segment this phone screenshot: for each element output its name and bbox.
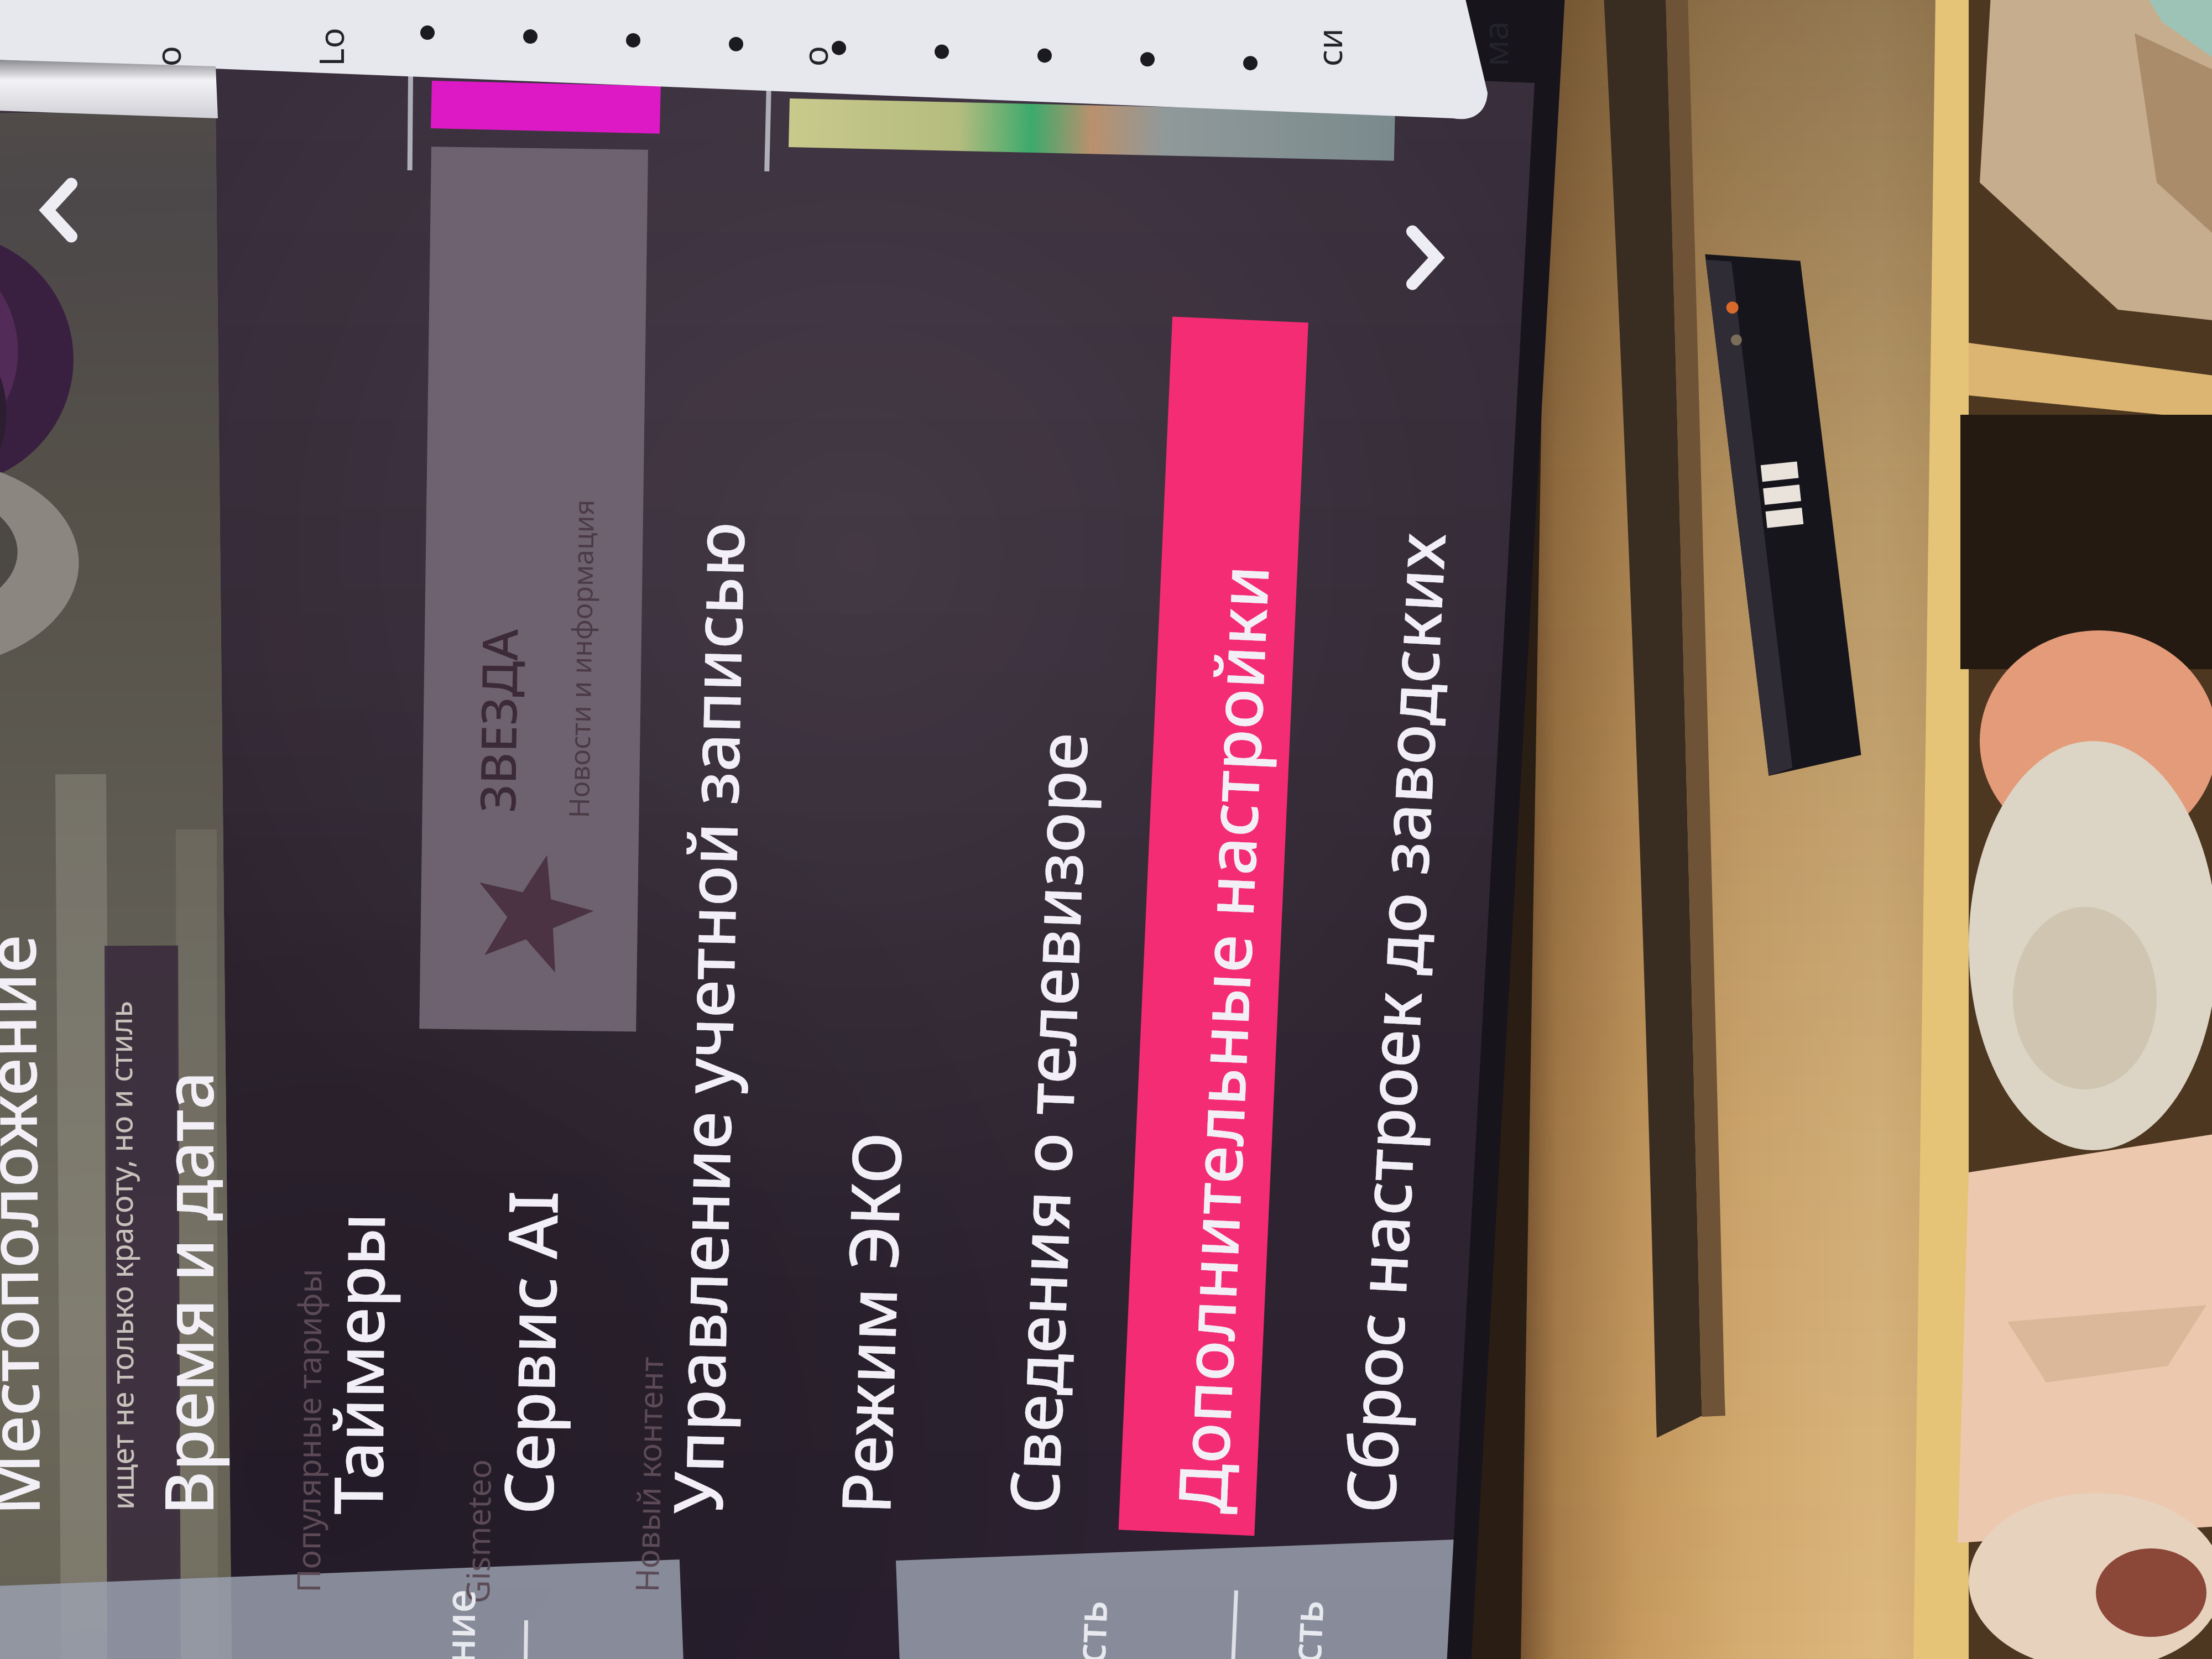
button[interactable]: Режим ЭКО (843, 276, 981, 1548)
button[interactable]: Управление учетной записью (675, 276, 813, 1548)
button[interactable]: Сброс настроек до заводских (1347, 276, 1485, 1548)
button[interactable]: Сервис AI (505, 276, 644, 1548)
button[interactable]: Местоположение (0, 276, 131, 1548)
button[interactable]: Время и дата (166, 276, 304, 1548)
button[interactable]: Next row (1394, 216, 1477, 315)
button[interactable]: Previous row (17, 166, 88, 265)
button[interactable]: Сведения о телевизоре (1011, 276, 1149, 1548)
button[interactable]: Дополнительные настройки (1179, 276, 1317, 1548)
button[interactable]: Таймеры (335, 276, 473, 1548)
